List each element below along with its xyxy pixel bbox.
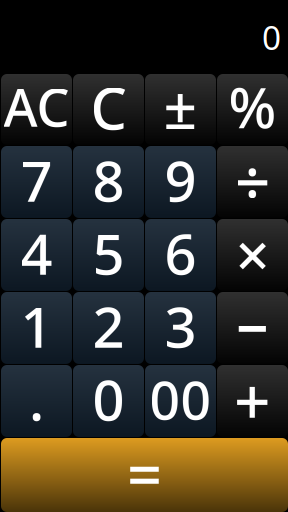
button[interactable]: 9 — [145, 146, 216, 218]
button[interactable]: = — [1, 438, 288, 512]
button[interactable]: 1 — [1, 292, 72, 364]
staticText: AC — [3, 72, 69, 141]
staticText: 5 — [92, 216, 124, 290]
button[interactable]: C — [73, 74, 144, 145]
button[interactable]: + — [217, 365, 288, 437]
staticText: 9 — [164, 143, 196, 217]
staticText: 2 — [92, 289, 124, 363]
staticText: + — [234, 357, 271, 442]
button[interactable]: ± — [145, 74, 216, 145]
staticText: 7 — [20, 143, 52, 217]
button[interactable]: 6 — [145, 219, 216, 291]
staticText: % — [228, 69, 276, 144]
staticText: 0 — [92, 362, 124, 436]
staticText: 1 — [20, 289, 52, 363]
button[interactable]: % — [217, 74, 288, 145]
button[interactable]: 3 — [145, 292, 216, 364]
button[interactable]: 0 — [73, 365, 144, 437]
button[interactable]: − — [217, 292, 288, 364]
staticText: 8 — [92, 143, 124, 217]
staticText: ÷ — [234, 139, 270, 223]
staticText: C — [90, 69, 126, 145]
button[interactable]: 2 — [73, 292, 144, 364]
button[interactable]: 5 — [73, 219, 144, 291]
button[interactable]: ÷ — [217, 146, 288, 218]
staticText: 0 — [262, 15, 281, 59]
button[interactable]: 7 — [1, 146, 72, 218]
button[interactable]: × — [217, 219, 288, 291]
button[interactable]: 00 — [145, 365, 216, 437]
button[interactable]: . — [1, 365, 72, 437]
staticText: = — [127, 432, 162, 512]
button[interactable]: 8 — [73, 146, 144, 218]
staticText: 4 — [20, 216, 52, 290]
staticText: . — [29, 362, 44, 436]
staticText: × — [235, 214, 269, 294]
staticText: − — [236, 290, 269, 364]
button[interactable]: 4 — [1, 219, 72, 291]
staticText: 6 — [164, 216, 196, 290]
staticText: ± — [163, 67, 197, 145]
button[interactable]: AC — [1, 74, 72, 145]
staticText: 3 — [164, 289, 196, 363]
staticText: 00 — [149, 364, 211, 434]
